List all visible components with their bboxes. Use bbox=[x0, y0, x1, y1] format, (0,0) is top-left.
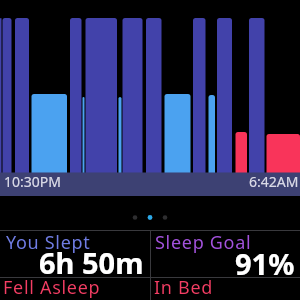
staticText: 10:30PM bbox=[4, 172, 61, 191]
staticText: 91% bbox=[235, 244, 295, 283]
staticText: Sleep Goal bbox=[155, 230, 252, 255]
staticText: You Slept bbox=[6, 230, 91, 255]
button[interactable]: Fell Asleep bbox=[0, 275, 150, 300]
staticText: Fell Asleep bbox=[3, 275, 101, 300]
button[interactable]: In Bed bbox=[150, 275, 300, 300]
staticText: In Bed bbox=[154, 275, 214, 300]
button[interactable]: Sleep Goal bbox=[150, 231, 300, 277]
button[interactable]: You Slept bbox=[0, 231, 150, 277]
button[interactable] bbox=[125, 211, 175, 224]
staticText: 6:42AM bbox=[249, 172, 299, 191]
staticText: 6h 50m bbox=[39, 243, 144, 282]
